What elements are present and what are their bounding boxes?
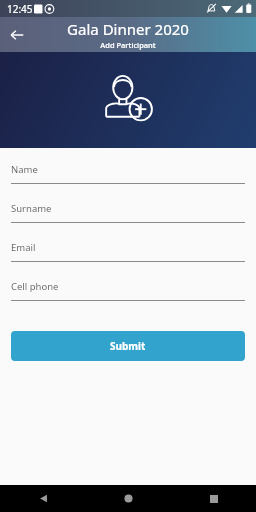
button[interactable]: Name (11, 156, 245, 195)
button[interactable]: Surname (11, 195, 245, 234)
button[interactable]: Recent apps (171, 485, 256, 512)
button[interactable]: Cell phone (11, 273, 245, 312)
staticText: Submit (110, 339, 146, 353)
button[interactable]: Back (0, 18, 34, 52)
staticText: Cell phone (11, 280, 59, 293)
button[interactable]: Home (86, 485, 171, 512)
staticText: Surname (11, 202, 52, 215)
button[interactable]: Back (0, 485, 86, 512)
staticText: Email (11, 241, 36, 254)
staticText: Add Participant (100, 40, 156, 50)
staticText: 12:45 (7, 2, 33, 16)
staticText: Gala Dinner 2020 (67, 19, 189, 39)
button[interactable]: Submit (11, 331, 245, 361)
staticText: Name (11, 163, 38, 176)
button[interactable]: Email (11, 234, 245, 273)
